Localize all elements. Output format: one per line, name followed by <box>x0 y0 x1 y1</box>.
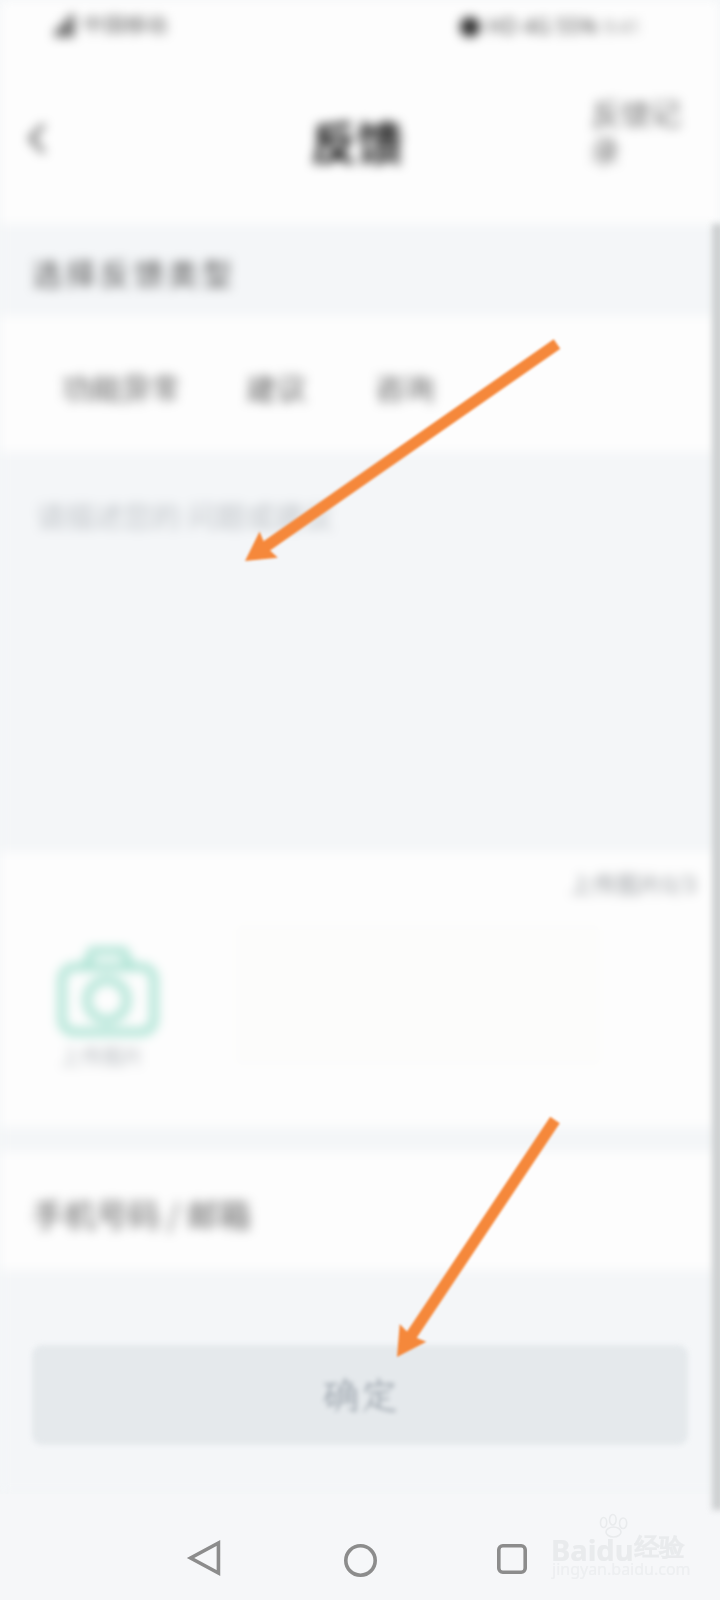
staticText: HD 4G 55% <box>487 12 598 41</box>
staticText: 中国移动 <box>83 12 167 38</box>
staticText: 上传图片 <box>60 1040 144 1070</box>
staticText: 反馈 <box>311 107 403 174</box>
staticText: jingyan.baidu.com <box>552 1558 691 1580</box>
staticText: 手机号码 / 邮箱 <box>32 1190 251 1236</box>
button[interactable]: 上传图片 <box>40 940 180 1070</box>
button[interactable]: 请描述您的 问题或建议 <box>0 452 720 852</box>
staticText: 请描述您的 问题或建议 <box>36 494 333 536</box>
staticText: 选择反馈类型 <box>32 250 236 293</box>
button[interactable]: Back <box>165 1518 245 1598</box>
button[interactable]: 建议 <box>247 370 307 408</box>
staticText: 录 <box>591 133 621 171</box>
button[interactable]: Back <box>0 102 72 174</box>
button[interactable]: 反馈记 <box>591 95 695 171</box>
staticText: Baidu <box>551 1530 634 1569</box>
staticText: 9:41 <box>603 14 641 40</box>
staticText: 上传图片0/3 <box>570 866 697 899</box>
button[interactable]: 功能异常 <box>62 370 182 408</box>
button[interactable]: 咨询 <box>375 370 435 408</box>
staticText: 经验 <box>634 1532 684 1563</box>
button[interactable]: Recent apps <box>472 1519 552 1599</box>
staticText: 确定 <box>322 1370 399 1420</box>
button[interactable]: 确定 <box>32 1345 688 1445</box>
button[interactable]: Home <box>320 1520 400 1600</box>
staticText: 反馈记 <box>591 95 681 133</box>
